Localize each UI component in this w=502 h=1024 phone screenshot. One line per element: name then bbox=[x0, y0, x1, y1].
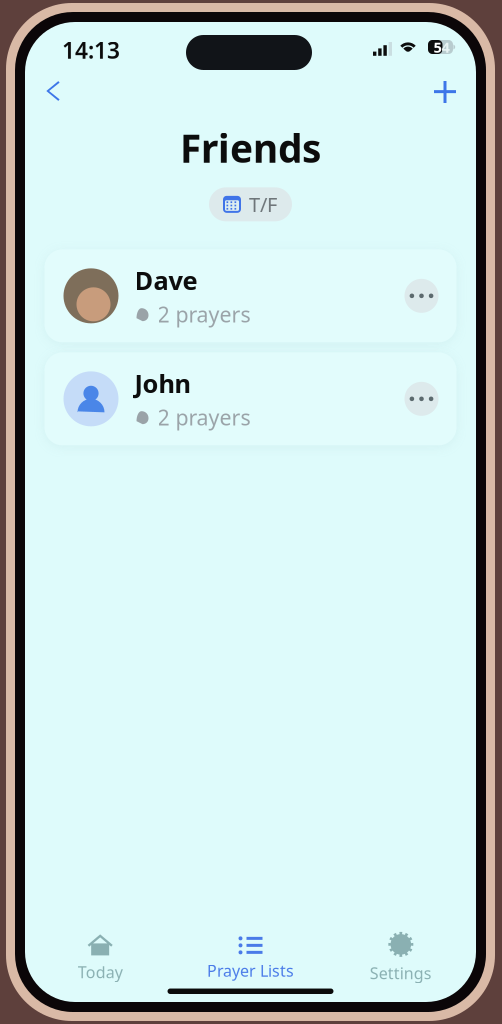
button[interactable]: More options bbox=[404, 382, 438, 416]
button[interactable]: Back bbox=[25, 74, 76, 115]
staticText: John bbox=[134, 366, 190, 400]
button[interactable]: Add friend bbox=[418, 74, 476, 116]
staticText: Prayer Lists bbox=[207, 960, 294, 981]
staticText: 4 bbox=[441, 37, 449, 57]
staticText: 2 prayers bbox=[157, 300, 250, 328]
button[interactable]: T/F bbox=[209, 187, 292, 221]
staticText: Friends bbox=[180, 122, 321, 173]
staticText: 5 bbox=[433, 37, 441, 57]
button[interactable]: Dave bbox=[44, 249, 456, 342]
staticText: T/F bbox=[249, 191, 277, 218]
staticText: Dave bbox=[134, 263, 197, 297]
button[interactable]: Settings bbox=[326, 928, 476, 986]
button[interactable]: Today bbox=[25, 928, 175, 986]
button[interactable]: More options bbox=[404, 279, 438, 313]
staticText: 14:13 bbox=[62, 35, 120, 65]
staticText: Today bbox=[78, 961, 123, 983]
button[interactable]: John bbox=[44, 352, 456, 445]
staticText: Settings bbox=[370, 962, 432, 984]
button[interactable]: Prayer Lists bbox=[175, 928, 326, 986]
staticText: 2 prayers bbox=[157, 403, 250, 431]
